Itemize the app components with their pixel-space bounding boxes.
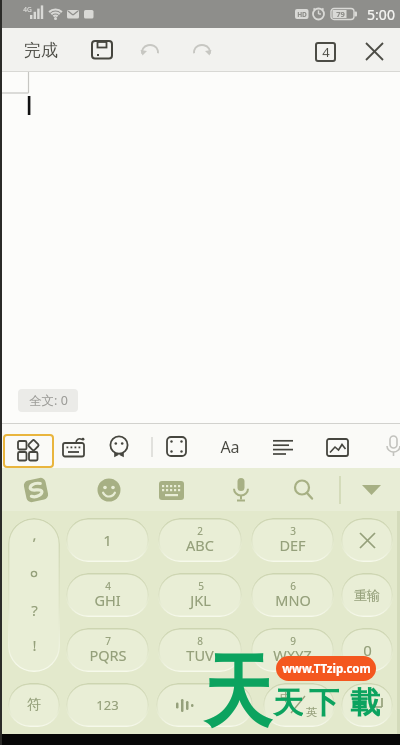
staticText: 5:00 [367, 5, 395, 23]
staticText: 天 [273, 684, 303, 720]
staticText: 3 [290, 524, 296, 538]
button[interactable]: 重输 [341, 573, 393, 617]
button[interactable] [360, 38, 388, 64]
staticText: 4 [322, 43, 330, 61]
staticText: 中 [280, 690, 291, 704]
button[interactable]: 9 [251, 628, 334, 672]
button[interactable]: 2 [158, 518, 242, 562]
button[interactable]: 中 [263, 683, 335, 727]
staticText: 9 [290, 634, 296, 648]
button[interactable] [20, 476, 52, 504]
staticText: HD [297, 10, 307, 19]
staticText: 0 [363, 640, 372, 660]
staticText: 5 [198, 579, 204, 593]
button[interactable]: 0 [341, 628, 393, 672]
button[interactable] [94, 476, 124, 504]
staticText: 天 [204, 642, 271, 743]
button[interactable]: 123 [66, 683, 149, 727]
button[interactable]: 8 [158, 628, 242, 672]
staticText: , [32, 524, 37, 544]
button[interactable]: 3 [251, 518, 334, 562]
button[interactable] [86, 36, 118, 64]
staticText: 2 [197, 524, 203, 538]
button[interactable] [103, 432, 135, 462]
button[interactable]: , [8, 518, 60, 672]
button[interactable] [188, 37, 216, 65]
staticText: 4 [105, 579, 111, 593]
staticText: 全文: 0 [29, 392, 68, 409]
button[interactable] [386, 432, 400, 462]
staticText: 79 [336, 9, 345, 19]
button[interactable] [341, 683, 393, 727]
button[interactable] [319, 432, 355, 462]
staticText: Aa [220, 436, 240, 458]
button[interactable] [228, 475, 254, 505]
staticText: GHI [94, 590, 121, 610]
button[interactable] [160, 432, 194, 462]
staticText: 7 [105, 634, 111, 648]
staticText: 6 [290, 579, 296, 593]
button[interactable] [354, 476, 388, 504]
staticText: ? [31, 600, 38, 620]
button[interactable] [341, 518, 393, 562]
button[interactable]: 5 [158, 573, 242, 617]
staticText: TUV [186, 645, 214, 665]
staticText: 8 [197, 634, 203, 648]
button[interactable]: 4 [66, 573, 149, 617]
button[interactable] [136, 37, 164, 65]
button[interactable] [290, 476, 318, 504]
button[interactable]: 完成 [10, 35, 72, 65]
staticText: 1 [103, 530, 112, 550]
staticText: 符 [27, 696, 41, 714]
staticText: 英 [306, 705, 317, 719]
button[interactable]: 4 [313, 41, 337, 63]
button[interactable]: 符 [8, 683, 60, 727]
staticText: 下 [309, 684, 339, 720]
staticText: MNO [275, 590, 311, 610]
button[interactable]: Aa [212, 432, 248, 462]
staticText: JKL [190, 590, 211, 610]
button[interactable]: 1 [66, 518, 149, 562]
staticText: 載 [350, 684, 380, 720]
staticText: 完成 [24, 40, 58, 61]
staticText: WXYZ [273, 645, 312, 665]
button[interactable]: www.TTzip.com [276, 656, 376, 681]
button[interactable] [3, 434, 54, 468]
staticText: 123 [96, 696, 119, 714]
button[interactable] [265, 432, 301, 462]
staticText: ABC [186, 535, 214, 555]
staticText: 重输 [354, 587, 380, 603]
staticText: ! [32, 635, 37, 655]
staticText: DEF [279, 535, 306, 555]
button[interactable] [156, 683, 253, 727]
staticText: 4G [23, 5, 32, 14]
staticText: PQRS [89, 645, 127, 665]
staticText: www.TTzip.com [282, 661, 371, 677]
button[interactable]: 7 [66, 628, 149, 672]
button[interactable]: 6 [251, 573, 334, 617]
button[interactable] [58, 432, 92, 462]
button[interactable] [156, 476, 186, 504]
